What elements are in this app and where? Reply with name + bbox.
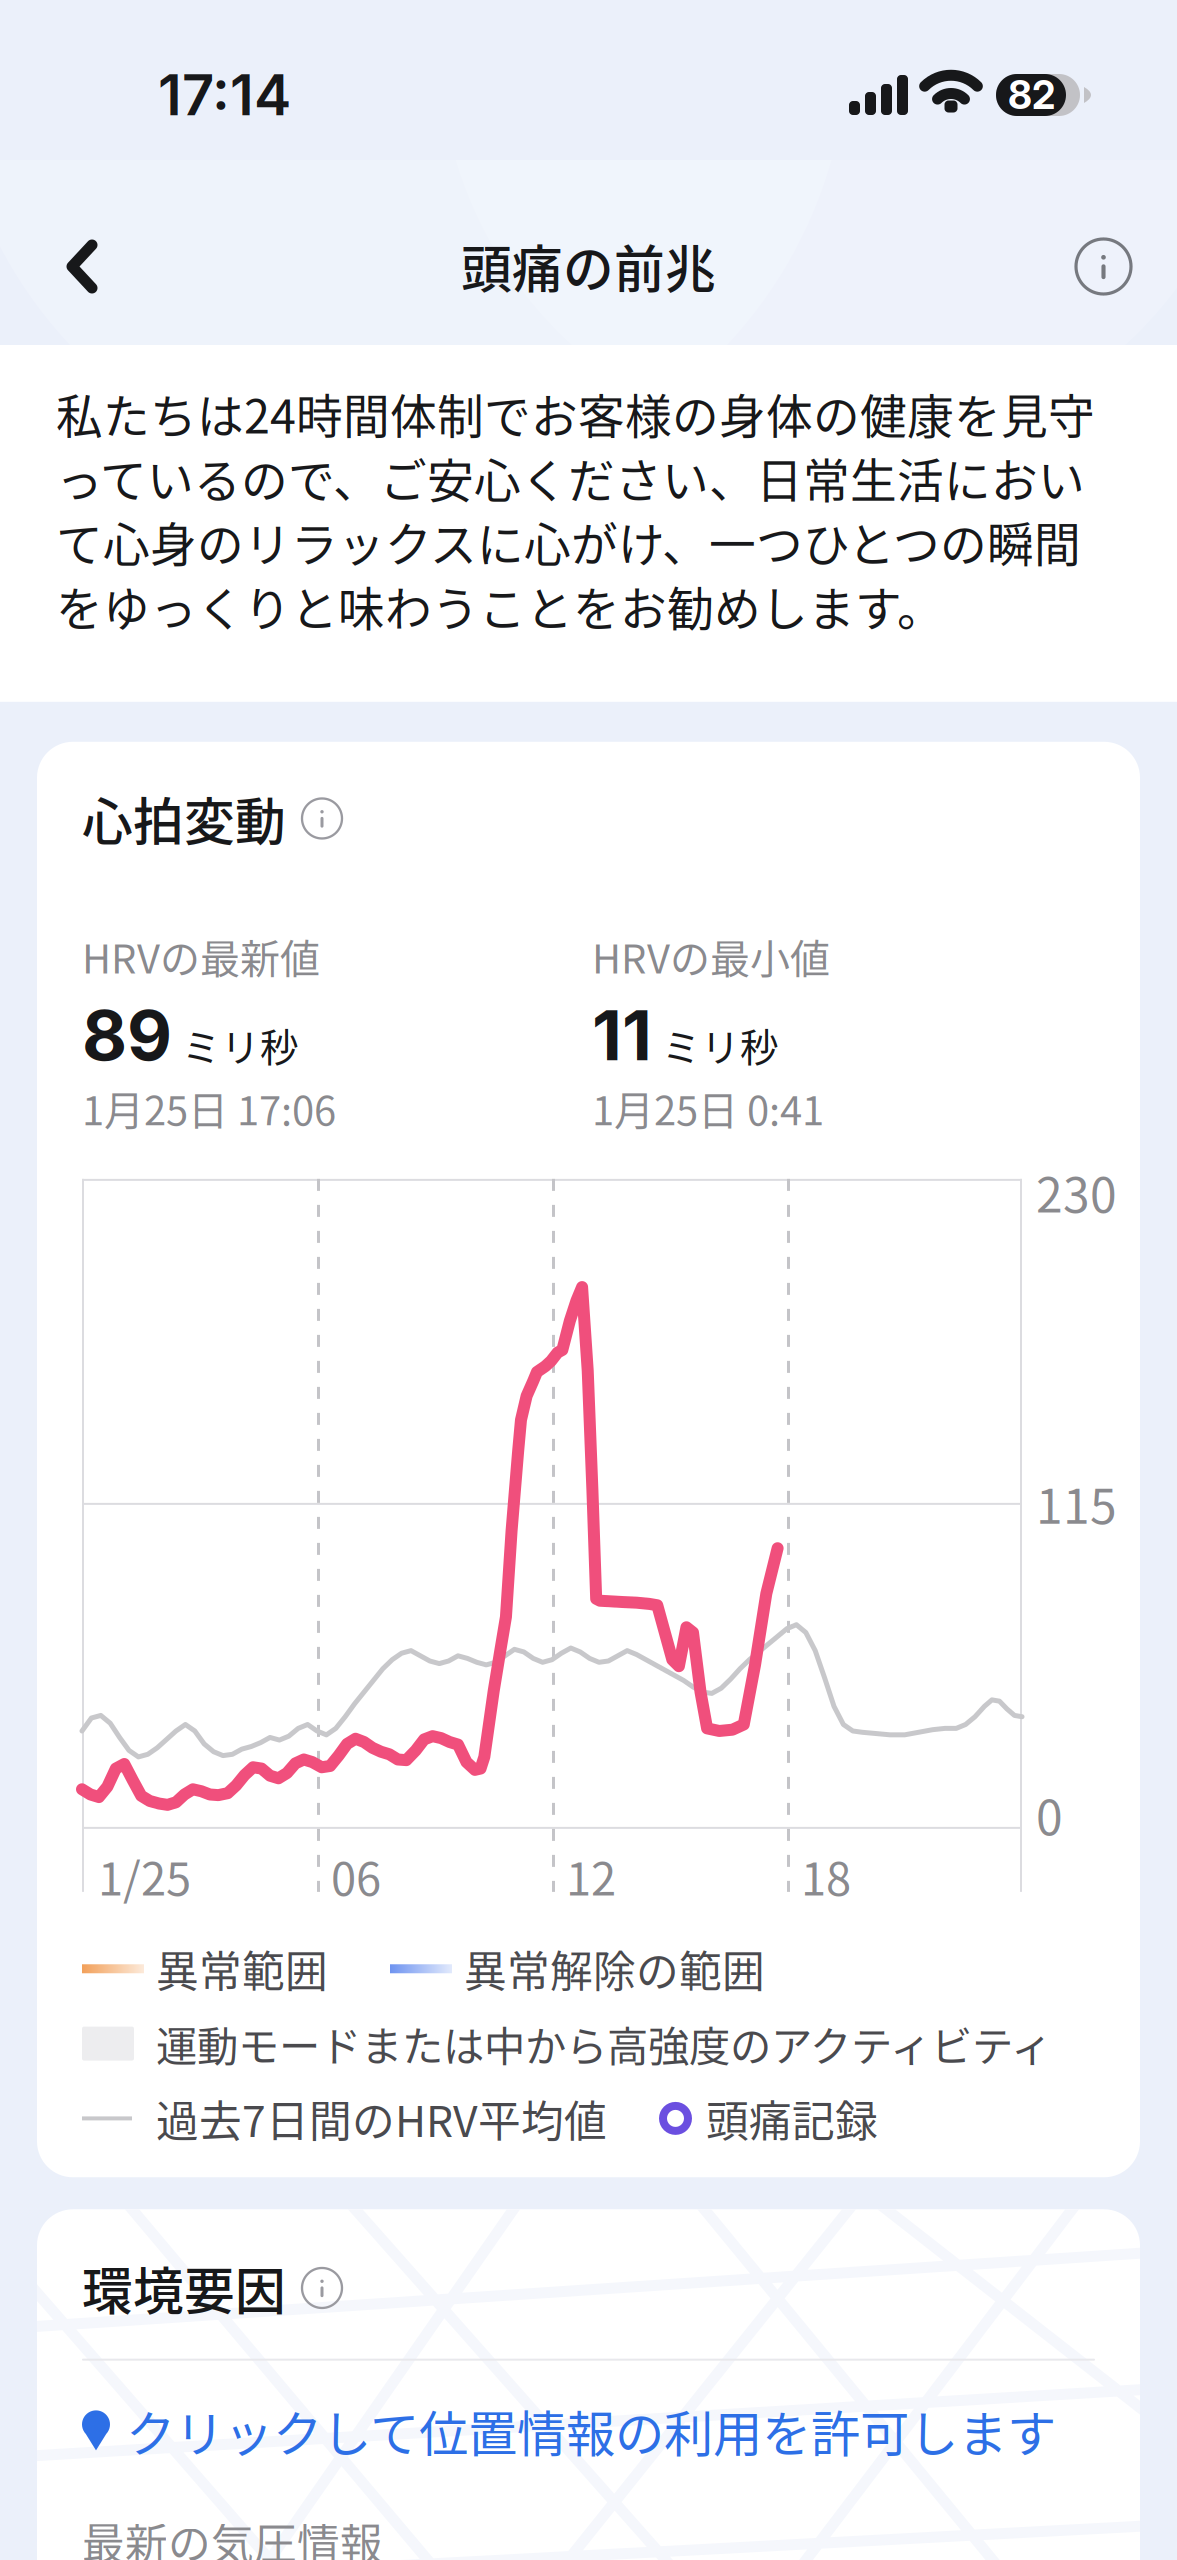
staticText: HRVの最小値 bbox=[592, 927, 830, 985]
staticText: HRVの最新値 bbox=[82, 927, 320, 985]
button[interactable]: Back bbox=[32, 195, 126, 310]
staticText: 運動モードまたは中から高強度のアクティビティ bbox=[156, 2014, 1052, 2074]
staticText: 17:14 bbox=[158, 61, 291, 129]
staticText: 最新の気圧情報 bbox=[82, 2510, 383, 2560]
staticText: 1月25日 17:06 bbox=[82, 1079, 336, 1137]
staticText: 過去7日間のHRV平均値 bbox=[156, 2087, 607, 2149]
staticText: 06 bbox=[331, 1843, 381, 1908]
button[interactable]: Info bbox=[1056, 191, 1145, 314]
staticText: 1/25 bbox=[98, 1843, 191, 1908]
staticText: 89 bbox=[82, 993, 172, 1077]
staticText: 18 bbox=[801, 1843, 851, 1908]
staticText: ミリ秒 bbox=[182, 1017, 299, 1073]
staticText: クリックして位置情報の利用を許可します bbox=[126, 2395, 1056, 2466]
staticText: 頭痛記録 bbox=[706, 2087, 878, 2149]
staticText: 頭痛の前兆 bbox=[461, 229, 716, 303]
staticText: 異常範囲 bbox=[156, 1938, 328, 2000]
staticText: 12 bbox=[566, 1843, 616, 1908]
staticText: 115 bbox=[1036, 1468, 1117, 1538]
button[interactable]: About 環境要因 bbox=[302, 2268, 342, 2308]
button[interactable]: About 心拍変動 bbox=[302, 798, 342, 838]
staticText: 心拍変動 bbox=[82, 782, 286, 855]
button[interactable]: クリックして位置情報の利用を許可します bbox=[82, 2395, 1095, 2466]
staticText: 230 bbox=[1036, 1157, 1117, 1226]
staticText: 1月25日 0:41 bbox=[592, 1079, 824, 1137]
staticText: 環境要因 bbox=[82, 2251, 286, 2325]
staticText: 異常解除の範囲 bbox=[464, 1938, 765, 2000]
staticText: 82 bbox=[1008, 72, 1055, 118]
staticText: 0 bbox=[1036, 1779, 1063, 1849]
staticText: ミリ秒 bbox=[662, 1017, 779, 1073]
staticText: 11 bbox=[592, 993, 652, 1077]
staticText: 私たちは24時間体制でお客様の身体の健康を見守 っているので、ご安心ください、日… bbox=[56, 381, 1095, 638]
